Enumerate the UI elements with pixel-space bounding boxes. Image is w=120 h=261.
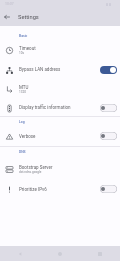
staticText: DNS — [19, 150, 26, 154]
button[interactable]: Timeout — [0, 41, 120, 59]
button[interactable]: Bypass LAN address — [0, 60, 120, 79]
button[interactable]: Back — [0, 10, 14, 24]
staticText: Settings — [18, 14, 39, 21]
staticText: Log — [19, 120, 25, 124]
staticText: MTU — [19, 85, 29, 90]
button[interactable]: Toggle — [100, 185, 117, 193]
button[interactable]: Toggle — [100, 66, 117, 74]
button[interactable]: Display traffic information — [0, 99, 120, 116]
button[interactable]: Bootstrap Server — [0, 160, 120, 178]
staticText: Verbose — [19, 134, 36, 139]
staticText: Bootstrap Server — [19, 165, 53, 170]
staticText: Bypass LAN address — [19, 67, 61, 72]
button[interactable]: Verbose — [0, 127, 120, 145]
staticText: dot.ndns.google — [19, 170, 42, 174]
staticText: 10:07 — [5, 2, 14, 6]
button[interactable]: MTU — [0, 80, 120, 98]
staticText: Prioritize IPv6 — [19, 187, 47, 192]
staticText: 10s — [19, 51, 25, 55]
button[interactable]: Prioritize IPv6 — [0, 180, 120, 198]
staticText: Display traffic information — [19, 105, 71, 110]
button[interactable]: Toggle — [100, 104, 117, 112]
button[interactable]: Toggle — [100, 132, 117, 140]
staticText: Timeout — [19, 46, 36, 51]
staticText: 1320 — [19, 90, 26, 94]
staticText: Basic — [19, 34, 28, 38]
